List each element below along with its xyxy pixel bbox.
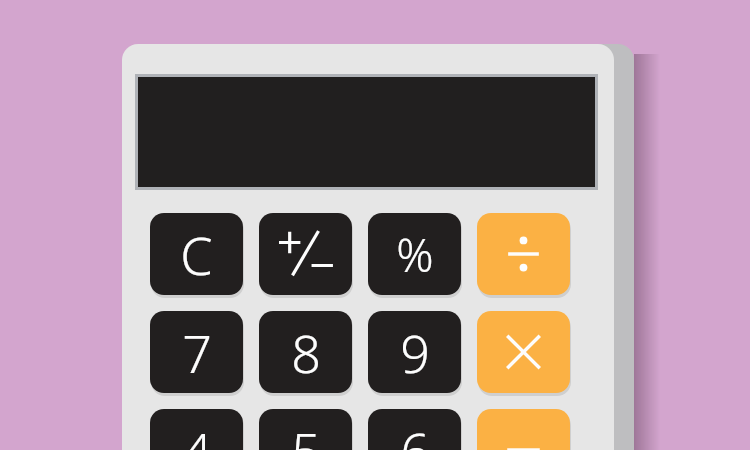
staticText: % (396, 223, 434, 286)
staticText: 4 (182, 415, 212, 450)
staticText: 8 (291, 317, 321, 388)
button[interactable]: Clear (150, 213, 243, 295)
button[interactable]: Nine (368, 311, 461, 393)
button[interactable]: Multiply (477, 311, 570, 393)
button[interactable]: Eight (259, 311, 352, 393)
button[interactable]: Five (259, 409, 352, 450)
button[interactable]: Divide (477, 213, 570, 295)
staticText: 9 (400, 317, 430, 388)
button[interactable]: Minus (477, 409, 570, 450)
button[interactable]: Four (150, 409, 243, 450)
button[interactable]: Seven (150, 311, 243, 393)
staticText: C (180, 219, 213, 290)
button[interactable]: Percent (368, 213, 461, 295)
button[interactable]: Plus minus (259, 213, 352, 295)
staticText: 6 (400, 415, 430, 450)
staticText: 7 (182, 317, 212, 388)
button[interactable]: Six (368, 409, 461, 450)
staticText: 5 (291, 415, 321, 450)
